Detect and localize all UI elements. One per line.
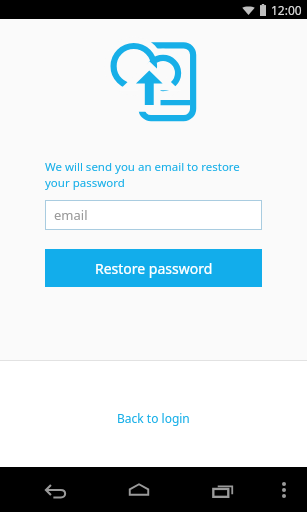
button[interactable]: More options xyxy=(265,482,303,498)
staticText: email xyxy=(54,206,88,224)
staticText: Back to login xyxy=(117,410,190,426)
button[interactable]: Restore password xyxy=(45,249,262,287)
button[interactable]: Back to login xyxy=(109,406,198,430)
staticText: We will send you an email to restore you… xyxy=(45,159,262,190)
staticText: Restore password xyxy=(95,259,213,278)
button[interactable]: Home xyxy=(97,482,181,498)
button[interactable]: Recent apps xyxy=(181,481,265,499)
button[interactable]: Back xyxy=(14,481,97,499)
staticText: 12:00 xyxy=(271,2,302,18)
button[interactable]: email xyxy=(45,200,262,230)
